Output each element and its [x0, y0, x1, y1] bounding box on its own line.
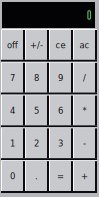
staticText: off	[7, 39, 18, 50]
button[interactable]: +	[73, 160, 97, 193]
staticText: ac	[79, 39, 89, 50]
button[interactable]: 6	[49, 95, 73, 127]
staticText: .	[35, 171, 38, 182]
button[interactable]: +/-	[25, 29, 49, 62]
staticText: 0	[10, 171, 15, 182]
button[interactable]: .	[25, 160, 49, 193]
staticText: -	[83, 138, 86, 149]
button[interactable]: 0	[1, 160, 25, 193]
button[interactable]: 2	[25, 127, 49, 160]
staticText: +/-	[30, 39, 43, 50]
staticText: 2	[34, 138, 39, 149]
staticText: +	[81, 171, 88, 182]
button[interactable]: *	[73, 95, 97, 127]
button[interactable]: 8	[25, 62, 49, 95]
staticText: ce	[55, 39, 65, 50]
button[interactable]: off	[1, 29, 25, 62]
button[interactable]: =	[49, 160, 73, 193]
staticText: *	[82, 105, 86, 116]
button[interactable]: /	[73, 62, 97, 95]
button[interactable]: 9	[49, 62, 73, 95]
button[interactable]: ce	[49, 29, 73, 62]
button[interactable]: 3	[49, 127, 73, 160]
button[interactable]: 5	[25, 95, 49, 127]
button[interactable]: 1	[1, 127, 25, 160]
button[interactable]: 7	[1, 62, 25, 95]
staticText: 8	[34, 72, 39, 83]
staticText: 6	[58, 105, 63, 116]
staticText: 9	[58, 72, 63, 83]
staticText: 4	[10, 105, 15, 116]
button[interactable]: ac	[73, 29, 97, 62]
button[interactable]: 4	[1, 95, 25, 127]
staticText: =	[57, 171, 64, 182]
button[interactable]: -	[73, 127, 97, 160]
staticText: 7	[10, 72, 15, 83]
staticText: 1	[10, 138, 15, 149]
staticText: /	[83, 72, 86, 83]
staticText: 3	[58, 138, 63, 149]
staticText: 5	[34, 105, 39, 116]
